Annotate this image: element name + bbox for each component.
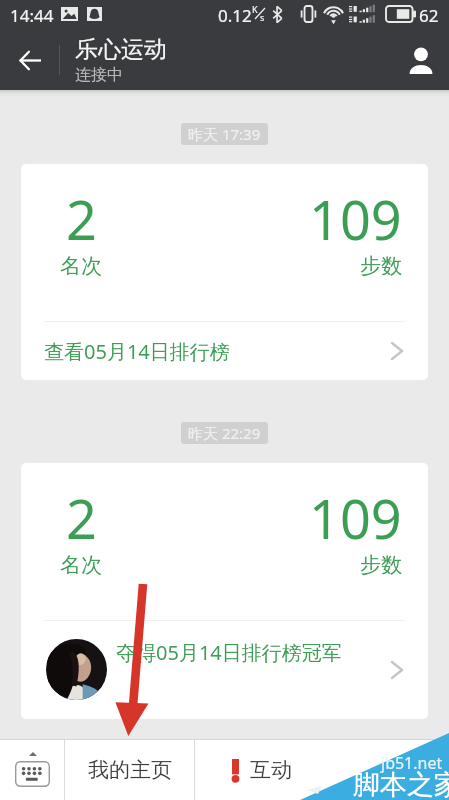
- button[interactable]: Back: [0, 30, 59, 90]
- staticText: 2: [66, 481, 97, 555]
- staticText: 昨天 17:39: [188, 124, 261, 144]
- staticText: 名次: [60, 552, 102, 578]
- staticText: 连接中: [75, 65, 123, 85]
- staticText: 乐心运动: [75, 35, 167, 64]
- staticText: s: [260, 11, 265, 23]
- button[interactable]: 互动: [195, 739, 449, 800]
- staticText: 夺得05月14日排行榜冠军: [116, 639, 342, 666]
- staticText: 互动: [250, 757, 292, 783]
- staticText: 109: [309, 481, 402, 555]
- button[interactable]: Keyboard: [0, 739, 64, 800]
- button[interactable]: 夺得05月14日排行榜冠军: [21, 621, 428, 719]
- staticText: 步数: [360, 253, 402, 279]
- staticText: K: [252, 3, 258, 15]
- staticText: 脚本之家: [353, 768, 449, 800]
- staticText: 昨天 22:29: [188, 423, 261, 443]
- staticText: 步数: [360, 552, 402, 578]
- staticText: 名次: [60, 253, 102, 279]
- staticText: 2: [66, 182, 97, 256]
- staticText: 查看05月14日排行榜: [44, 338, 230, 365]
- staticText: jb51.net: [381, 752, 443, 774]
- staticText: 0.12: [218, 4, 252, 27]
- staticText: 109: [309, 182, 402, 256]
- button[interactable]: 查看05月14日排行榜: [21, 322, 428, 380]
- staticText: 14:44: [10, 4, 54, 27]
- button[interactable]: 我的主页: [65, 739, 194, 800]
- button[interactable]: Profile: [393, 30, 449, 90]
- staticText: 62: [419, 4, 439, 27]
- staticText: 我的主页: [88, 757, 172, 783]
